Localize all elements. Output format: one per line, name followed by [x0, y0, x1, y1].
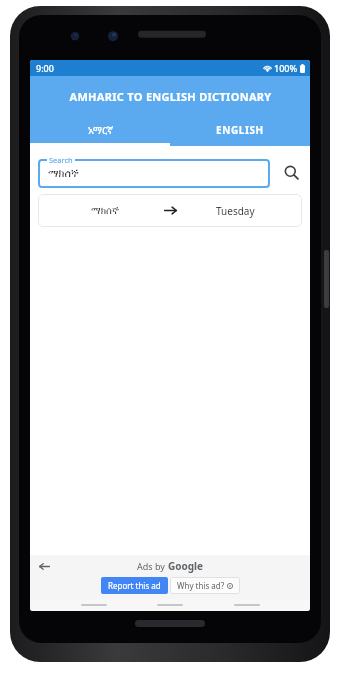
staticText: Search	[49, 155, 73, 165]
staticText: Google	[168, 559, 204, 573]
button[interactable]: Search	[38, 155, 270, 188]
button[interactable]: Search	[278, 159, 304, 185]
staticText: 9:00	[36, 62, 54, 74]
staticText: Ads by	[137, 560, 168, 572]
button[interactable]: Back	[36, 558, 52, 574]
staticText: ማክሰኞ	[91, 206, 119, 216]
staticText: AMHARIC TO ENGLISH DICTIONARY	[69, 89, 272, 104]
staticText: 100%	[274, 62, 298, 74]
staticText: Why this ad?	[177, 580, 225, 591]
button[interactable]: Why this ad?	[170, 577, 240, 594]
button[interactable]: ማክሰኞ	[38, 194, 302, 227]
button[interactable]: Navigation	[234, 604, 260, 606]
button[interactable]: አማርኛ	[30, 117, 170, 143]
button[interactable]: Report this ad	[101, 577, 168, 594]
staticText: አማርኛ	[88, 123, 113, 137]
staticText: ENGLISH	[216, 123, 264, 137]
staticText: Report this ad	[108, 580, 161, 591]
staticText: ማክሰኞ	[48, 168, 79, 179]
staticText: Tuesday	[216, 204, 255, 218]
button[interactable]: Navigation	[157, 604, 183, 606]
button[interactable]: ENGLISH	[170, 117, 310, 143]
button[interactable]: Navigation	[81, 604, 107, 606]
